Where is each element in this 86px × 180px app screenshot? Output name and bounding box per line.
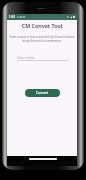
staticText: CM Convet Tool [7,22,77,29]
staticText: Convert [36,91,49,95]
staticText: 1:34 [9,15,15,19]
staticText: Enter a value in inches and click the Co… [9,35,75,42]
button[interactable]: Enter inches [17,56,69,61]
staticText: Enter inches [17,56,35,60]
button[interactable]: Convert [25,89,60,97]
